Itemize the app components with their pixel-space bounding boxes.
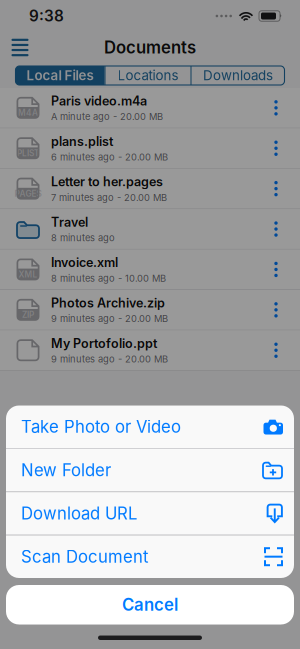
- staticText: New Folder: [21, 460, 111, 480]
- button[interactable]: Download URL: [6, 492, 294, 535]
- button[interactable]: Scan Document: [6, 535, 294, 578]
- staticText: 7 minutes ago - 20.00 MB: [51, 192, 167, 203]
- button[interactable]: Travel: [0, 209, 300, 249]
- button[interactable]: Locations: [105, 66, 190, 85]
- button[interactable]: Cancel: [6, 585, 294, 624]
- staticText: Travel: [51, 215, 88, 230]
- staticText: 9 minutes ago - 20.00 MB: [51, 353, 168, 365]
- staticText: 8 minutes ago: [51, 232, 115, 243]
- staticText: Download URL: [21, 503, 137, 523]
- staticText: 8 minutes ago - 10.00 MB: [51, 273, 166, 284]
- staticText: M4A: [18, 108, 38, 118]
- staticText: Documents: [104, 37, 196, 58]
- staticText: Invoice.xml: [51, 255, 118, 270]
- staticText: 6 minutes ago - 20.00 MB: [51, 151, 168, 163]
- staticText: ZIP: [22, 310, 34, 320]
- staticText: Paris video.m4a: [51, 93, 147, 109]
- staticText: Photos Archive.zip: [51, 295, 165, 311]
- staticText: XML: [18, 269, 37, 279]
- button[interactable]: Menu: [5, 33, 35, 61]
- staticText: 9 minutes ago - 20.00 MB: [51, 313, 168, 324]
- staticText: Scan Document: [21, 547, 148, 567]
- staticText: PLIST: [17, 148, 39, 158]
- staticText: Cancel: [122, 595, 178, 615]
- button[interactable]: XML: [0, 250, 300, 289]
- staticText: PAGES: [14, 189, 41, 199]
- staticText: My Portofolio.ppt: [51, 336, 157, 351]
- button[interactable]: Downloads: [191, 66, 284, 85]
- staticText: Letter to her.pages: [51, 174, 163, 189]
- button[interactable]: M4A: [0, 88, 300, 128]
- button[interactable]: Local Files: [15, 66, 104, 85]
- staticText: Downloads: [203, 67, 273, 83]
- staticText: plans.plist: [51, 134, 113, 149]
- staticText: A minute ago - 20.00 MB: [51, 111, 163, 122]
- button[interactable]: New Folder: [6, 449, 294, 491]
- button[interactable]: My Portofolio.ppt: [0, 330, 300, 370]
- button[interactable]: PLIST: [0, 128, 300, 168]
- staticText: Take Photo or Video: [21, 417, 181, 437]
- button[interactable]: ZIP: [0, 290, 300, 330]
- button[interactable]: PAGES: [0, 169, 300, 208]
- staticText: Locations: [117, 67, 178, 83]
- button[interactable]: Take Photo or Video: [6, 405, 294, 448]
- staticText: 9:38: [29, 7, 64, 25]
- staticText: Local Files: [26, 67, 93, 83]
